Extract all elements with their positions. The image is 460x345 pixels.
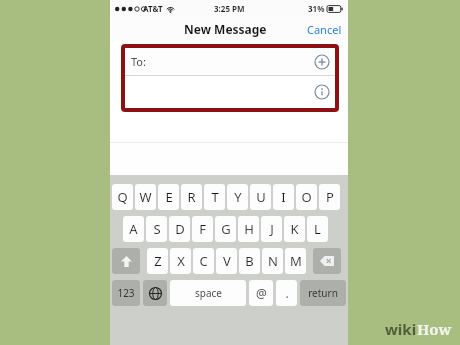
- staticText: T: [211, 188, 219, 206]
- staticText: B: [245, 252, 254, 270]
- staticText: @: [256, 285, 267, 301]
- button[interactable]: Change keyboard language: [143, 280, 167, 306]
- button[interactable]: A: [123, 216, 144, 242]
- staticText: To:: [131, 54, 146, 69]
- staticText: space: [195, 286, 222, 300]
- button[interactable]: Add contact: [314, 54, 330, 70]
- staticText: wiki: [385, 319, 417, 339]
- button[interactable]: Shift: [112, 248, 140, 274]
- staticText: return: [308, 286, 338, 300]
- staticText: C: [199, 252, 208, 270]
- button[interactable]: 123: [112, 280, 140, 306]
- button[interactable]: O: [296, 184, 317, 210]
- button[interactable]: W: [135, 184, 156, 210]
- button[interactable]: To:: [125, 48, 335, 75]
- staticText: AT&T: [143, 3, 163, 14]
- button[interactable]: Z: [147, 248, 168, 274]
- staticText: Z: [154, 252, 162, 270]
- button[interactable]: X: [170, 248, 191, 274]
- button[interactable]: S: [146, 216, 167, 242]
- staticText: Q: [117, 188, 128, 206]
- button[interactable]: F: [192, 216, 213, 242]
- button[interactable]: R: [181, 184, 202, 210]
- button[interactable]: M: [285, 248, 306, 274]
- staticText: F: [199, 220, 206, 238]
- button[interactable]: Q: [112, 184, 133, 210]
- staticText: 3:25 PM: [214, 3, 245, 14]
- staticText: U: [256, 188, 266, 206]
- staticText: S: [153, 220, 161, 238]
- staticText: A: [129, 220, 138, 238]
- button[interactable]: Info: [125, 76, 335, 108]
- button[interactable]: L: [307, 216, 328, 242]
- staticText: K: [290, 220, 299, 238]
- staticText: W: [139, 188, 152, 206]
- button[interactable]: Backspace: [313, 248, 341, 274]
- button[interactable]: Info: [314, 84, 330, 100]
- staticText: I: [281, 188, 286, 206]
- staticText: G: [221, 220, 231, 238]
- button[interactable]: G: [215, 216, 236, 242]
- staticText: J: [270, 220, 274, 238]
- staticText: L: [314, 220, 321, 238]
- staticText: 123: [117, 286, 135, 300]
- staticText: 31%: [308, 3, 325, 14]
- staticText: Cancel: [307, 22, 342, 37]
- button[interactable]: B: [239, 248, 260, 274]
- staticText: .: [285, 285, 289, 301]
- staticText: E: [165, 188, 173, 206]
- staticText: R: [187, 188, 196, 206]
- staticText: H: [244, 220, 254, 238]
- staticText: V: [223, 252, 231, 270]
- button[interactable]: J: [261, 216, 282, 242]
- button[interactable]: Cancel: [301, 22, 348, 37]
- button[interactable]: E: [158, 184, 179, 210]
- button[interactable]: K: [284, 216, 305, 242]
- button[interactable]: H: [238, 216, 259, 242]
- staticText: D: [175, 220, 185, 238]
- staticText: P: [326, 188, 334, 206]
- staticText: New Message: [184, 21, 267, 37]
- button[interactable]: I: [273, 184, 294, 210]
- button[interactable]: return: [300, 280, 346, 306]
- button[interactable]: C: [193, 248, 214, 274]
- staticText: X: [177, 252, 185, 270]
- staticText: How: [417, 319, 452, 339]
- button[interactable]: T: [204, 184, 225, 210]
- button[interactable]: V: [216, 248, 237, 274]
- button[interactable]: D: [169, 216, 190, 242]
- staticText: M: [290, 252, 302, 270]
- button[interactable]: N: [262, 248, 283, 274]
- button[interactable]: P: [319, 184, 340, 210]
- button[interactable]: At sign: [249, 280, 273, 306]
- button[interactable]: .: [276, 280, 297, 306]
- staticText: O: [301, 188, 312, 206]
- button[interactable]: space: [170, 280, 246, 306]
- button[interactable]: U: [250, 184, 271, 210]
- staticText: N: [268, 252, 278, 270]
- staticText: Y: [234, 188, 242, 206]
- button[interactable]: Y: [227, 184, 248, 210]
